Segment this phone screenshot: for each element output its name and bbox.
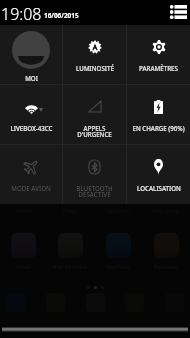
button[interactable]: APPELS D'URGENCE [63,85,126,144]
staticText: Gmail [16,263,32,270]
button[interactable]: Quick settings [168,2,188,22]
staticText: LUMINOSITÉ [76,64,114,72]
staticText: EN CHARGE (96%) [132,124,185,132]
button[interactable]: EN CHARGE (96%) [127,85,190,144]
staticText: 16/06/2015 [44,11,79,20]
button[interactable]: PARAMÈTRES [127,25,190,84]
staticText: YouTube [107,263,130,270]
staticText: LIVEBOX-43CC [10,124,53,132]
button[interactable]: MOI [0,25,62,84]
staticText: LOCALISATION [137,184,181,192]
button[interactable]: LIVEBOX-43CC [0,85,62,144]
button[interactable]: BLUETOOTH DÉSACTIVÉ [63,145,126,204]
staticText: BLUETOOTH DÉSACTIVÉ [76,184,113,199]
staticText: Play Musique [53,263,88,270]
staticText: MODE AVION [11,184,51,192]
staticText: PARAMÈTRES [139,64,178,72]
staticText: 19:08 [1,3,42,25]
staticText: APPELS D'URGENCE [77,124,112,139]
staticText: MOI [25,74,38,82]
button[interactable]: LOCALISATION [127,145,190,204]
staticText: Boutique [154,263,178,270]
button[interactable]: MODE AVION [0,145,62,204]
button[interactable]: LUMINOSITÉ [63,25,126,84]
